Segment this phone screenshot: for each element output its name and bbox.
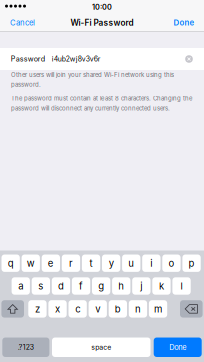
button[interactable]: y (102, 254, 120, 272)
staticText: g (98, 280, 104, 292)
staticText: d (58, 280, 64, 292)
staticText: 10:00 (92, 3, 112, 11)
staticText: Cancel (10, 18, 35, 27)
staticText: h (118, 280, 124, 292)
staticText: c (75, 303, 80, 315)
button[interactable]: f (72, 277, 90, 295)
button[interactable]: Shift (1, 300, 24, 318)
staticText: Done (173, 18, 194, 27)
button[interactable]: l (172, 277, 191, 295)
staticText: u (128, 257, 134, 269)
staticText: v (95, 303, 100, 315)
button[interactable]: c (68, 300, 87, 318)
button[interactable]: Cancel (0, 14, 50, 31)
button[interactable]: Clear text (180, 48, 198, 70)
button[interactable]: Done (154, 337, 202, 357)
button[interactable]: i (142, 254, 160, 272)
button[interactable]: h (112, 277, 130, 295)
staticText: q (8, 257, 14, 269)
button[interactable]: space (52, 337, 150, 357)
button[interactable]: Done (164, 14, 204, 31)
button[interactable]: .?123 (2, 337, 49, 357)
staticText: Wi-Fi Password (70, 18, 133, 28)
button[interactable]: t (82, 254, 100, 272)
button[interactable]: k (152, 277, 171, 295)
staticText: e (48, 257, 54, 269)
staticText: p (189, 257, 195, 269)
button[interactable]: s (32, 277, 50, 295)
staticText: i4ub2wj8v3v6r (52, 55, 101, 63)
button[interactable]: u (122, 254, 140, 272)
staticText: The password must contain at least 8 cha… (11, 95, 192, 112)
button[interactable]: r (62, 254, 80, 272)
staticText: o (168, 257, 174, 269)
button[interactable]: m (149, 300, 167, 318)
button[interactable]: p (182, 254, 201, 272)
staticText: j (140, 280, 142, 292)
button[interactable]: a (12, 277, 30, 295)
button[interactable]: e (42, 254, 60, 272)
button[interactable]: z (28, 300, 47, 318)
button[interactable]: x (48, 300, 67, 318)
button[interactable]: q (1, 254, 20, 272)
staticText: s (38, 280, 43, 292)
staticText: x (55, 303, 60, 315)
staticText: Password (11, 55, 45, 63)
staticText: a (18, 280, 23, 292)
staticText: z (35, 303, 40, 315)
staticText: i (150, 257, 152, 269)
staticText: space (91, 343, 111, 351)
button[interactable]: g (92, 277, 110, 295)
button[interactable]: w (22, 254, 40, 272)
staticText: .?123 (18, 343, 34, 351)
staticText: y (109, 257, 114, 269)
button[interactable]: j (132, 277, 150, 295)
staticText: Done (169, 343, 186, 352)
button[interactable]: d (52, 277, 70, 295)
staticText: n (135, 303, 141, 315)
staticText: t (90, 257, 93, 269)
button[interactable]: b (109, 300, 127, 318)
staticText: r (69, 257, 73, 269)
button[interactable]: n (129, 300, 147, 318)
staticText: f (79, 280, 83, 292)
staticText: Other users will join your shared Wi-Fi … (11, 71, 174, 88)
staticText: k (159, 280, 164, 292)
button[interactable]: Delete (180, 300, 203, 318)
button[interactable]: o (162, 254, 181, 272)
staticText: m (154, 303, 162, 315)
button[interactable]: v (89, 300, 107, 318)
staticText: l (181, 280, 183, 292)
staticText: w (27, 257, 35, 269)
staticText: b (115, 303, 121, 315)
